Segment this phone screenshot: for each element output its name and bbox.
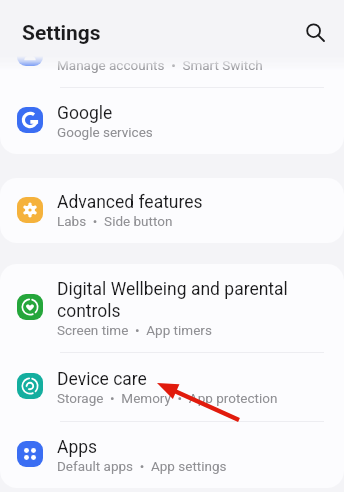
button[interactable]: Advanced features bbox=[0, 178, 344, 243]
staticText: Storage • Memory • App protection bbox=[57, 390, 278, 406]
button[interactable]: Samsung account bbox=[0, 21, 344, 87]
staticText: Samsung account bbox=[57, 36, 198, 57]
staticText: Digital Wellbeing and parental controls bbox=[57, 279, 334, 322]
button[interactable]: Device care bbox=[0, 353, 344, 421]
staticText: Default apps • App settings bbox=[57, 458, 227, 474]
staticText: Settings bbox=[22, 21, 101, 46]
button[interactable]: Apps bbox=[0, 422, 344, 488]
button[interactable]: Search bbox=[294, 12, 332, 50]
staticText: Google services bbox=[57, 124, 153, 140]
staticText: Device care bbox=[57, 369, 147, 390]
button[interactable]: Google bbox=[0, 88, 344, 154]
staticText: Google bbox=[57, 103, 113, 124]
staticText: Screen time • App timers bbox=[57, 322, 212, 338]
staticText: Labs • Side button bbox=[57, 213, 173, 229]
staticText: Advanced features bbox=[57, 192, 203, 213]
staticText: Apps bbox=[57, 437, 98, 458]
staticText: Manage accounts • Smart Switch bbox=[57, 57, 263, 73]
button[interactable]: Digital Wellbeing and parental controls bbox=[0, 264, 344, 352]
